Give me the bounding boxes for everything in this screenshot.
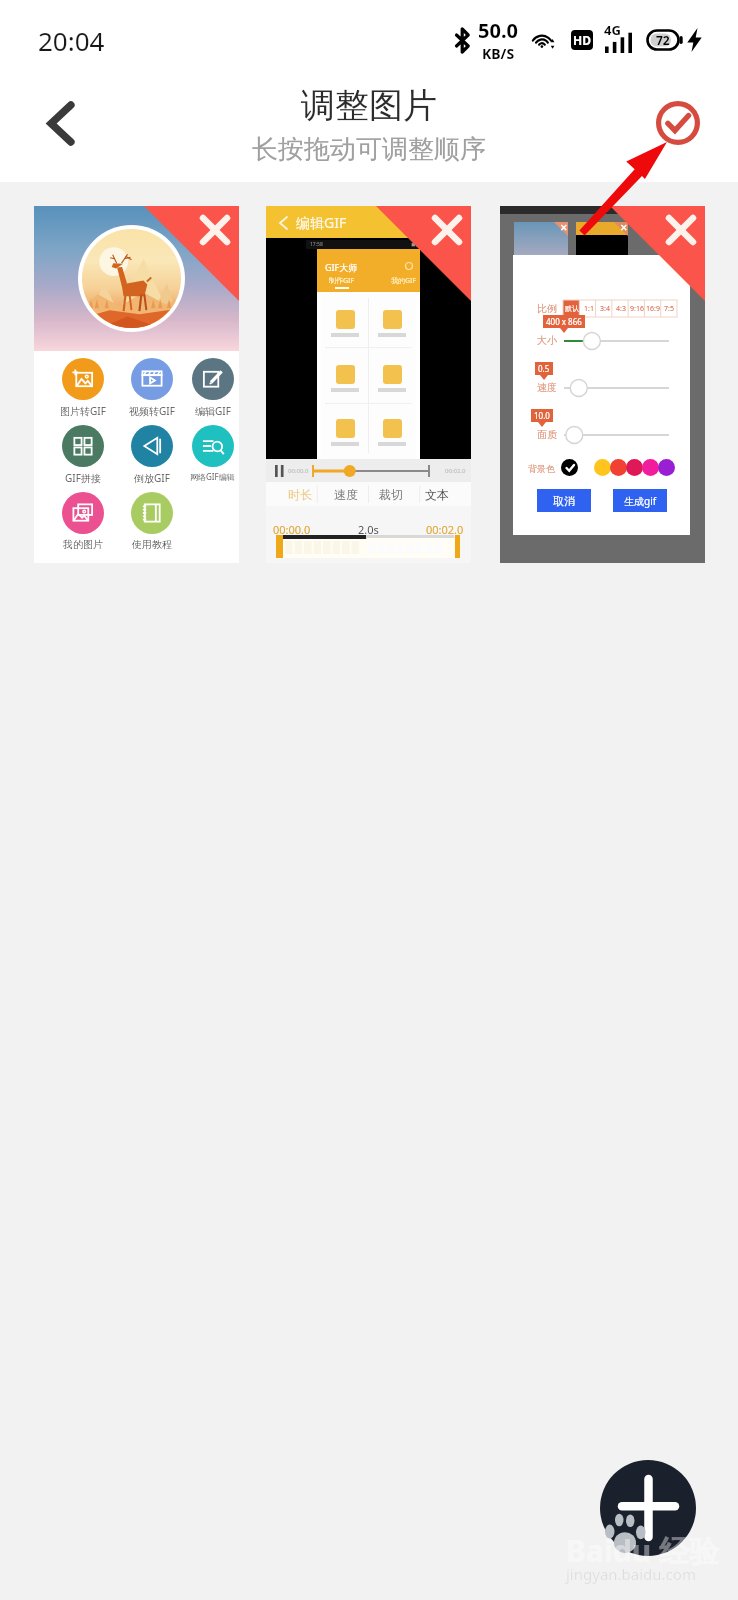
staticText: 背景色 [528, 463, 555, 474]
staticText: 00:00.0 [288, 467, 309, 475]
staticText: 倒放GIF [134, 471, 170, 485]
staticText: 文本 [425, 487, 449, 502]
staticText: 生成gif [624, 494, 657, 508]
staticText: Baidu 经验 [566, 1530, 720, 1571]
staticText: 制作GIF [329, 276, 355, 286]
staticText: 编辑GIF [195, 404, 231, 418]
staticText: HD [573, 32, 591, 48]
staticText: ◼◼◼ ▮ [411, 241, 428, 248]
staticText: 00:02.0 [445, 467, 466, 475]
staticText: 视频转GIF [129, 404, 175, 418]
staticText: 调整图片 [301, 84, 437, 127]
staticText: 我的GIF [391, 276, 417, 286]
staticText: jingyan.baidu.com [566, 1564, 696, 1584]
staticText: 默认 [565, 304, 579, 313]
staticText: 速度 [537, 381, 557, 394]
staticText: GIF拼接 [65, 471, 101, 485]
button[interactable]: Back [24, 86, 98, 160]
staticText: 72 [656, 32, 670, 48]
staticText: 10.0 [534, 410, 550, 421]
staticText: 4:3 [616, 304, 626, 314]
staticText: 20:04 [38, 23, 105, 58]
staticText: 50.0 [478, 17, 518, 44]
staticText: 速度 [334, 487, 358, 502]
staticText: 17:58 [310, 241, 323, 248]
staticText: 00:00.0 [273, 522, 311, 537]
staticText: 网络GIF编辑 [190, 471, 235, 482]
staticText: KB/S [482, 44, 515, 63]
button[interactable]: 编辑GIF [266, 206, 471, 563]
staticText: 使用教程 [132, 538, 172, 551]
staticText: GIF大师 [325, 261, 358, 273]
button[interactable]: 比例 [500, 206, 705, 563]
staticText: 时长 [288, 487, 312, 502]
button[interactable]: Remove [657, 206, 705, 254]
button[interactable]: Confirm [641, 86, 714, 159]
staticText: 400 x 866 [546, 316, 582, 327]
staticText: 面质 [537, 428, 557, 441]
button[interactable]: Add [600, 1460, 696, 1556]
staticText: 7:5 [664, 304, 674, 314]
staticText: 图片转GIF [60, 404, 106, 418]
button[interactable]: 图片转GIF [34, 206, 239, 563]
button[interactable]: Remove [191, 206, 239, 254]
staticText: 0.5 [538, 363, 550, 374]
staticText: 长按拖动可调整顺序 [252, 133, 486, 166]
staticText: 裁切 [379, 487, 403, 502]
button[interactable]: Remove [423, 206, 471, 254]
staticText: 编辑GIF [296, 213, 347, 232]
staticText: 我的图片 [63, 538, 103, 551]
staticText: 取消 [553, 494, 575, 508]
staticText: 2.0s [358, 522, 379, 537]
button[interactable]: 生成gif [613, 489, 667, 512]
staticText: 大小 [537, 334, 557, 347]
staticText: 16:9 [646, 304, 660, 314]
button[interactable]: 取消 [537, 489, 591, 512]
staticText: 9:16 [630, 304, 644, 314]
staticText: 比例 [537, 302, 557, 315]
staticText: 3:4 [600, 304, 610, 314]
staticText: 00:02.0 [426, 522, 464, 537]
staticText: 4G [604, 21, 621, 39]
staticText: 1:1 [584, 304, 594, 314]
